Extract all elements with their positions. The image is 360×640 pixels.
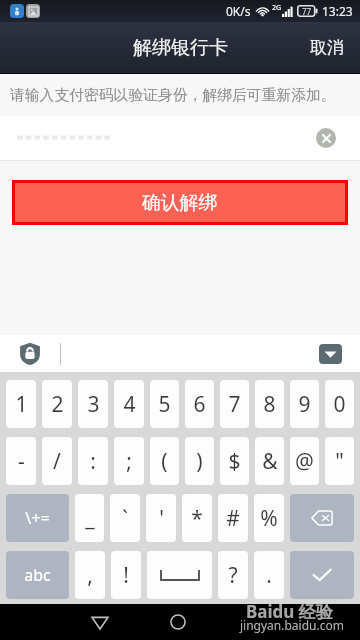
button[interactable]: ) bbox=[185, 437, 214, 485]
staticText: , bbox=[87, 561, 93, 590]
button[interactable]: . bbox=[254, 551, 284, 599]
staticText: jingyan.baidu.com bbox=[240, 617, 344, 633]
button[interactable]: 4 bbox=[114, 380, 144, 428]
staticText: . bbox=[266, 561, 272, 590]
button[interactable]: space bbox=[147, 551, 212, 599]
staticText: ? bbox=[228, 561, 238, 590]
button[interactable]: / bbox=[42, 437, 72, 485]
button[interactable]: abc bbox=[6, 551, 69, 599]
staticText: 2G bbox=[272, 3, 282, 13]
staticText: 2 bbox=[51, 390, 64, 419]
button[interactable]: 0 bbox=[325, 380, 354, 428]
staticText: 0 bbox=[333, 390, 346, 419]
staticText: ` bbox=[122, 504, 128, 533]
button[interactable]: - bbox=[6, 437, 36, 485]
button[interactable]: ' bbox=[146, 494, 176, 542]
button[interactable]: , bbox=[75, 551, 105, 599]
button[interactable]: _ bbox=[75, 494, 104, 542]
staticText: % bbox=[260, 504, 278, 533]
button[interactable]: Secure input bbox=[19, 342, 41, 365]
staticText: 4 bbox=[123, 390, 136, 419]
button[interactable]: ? bbox=[218, 551, 248, 599]
staticText: 1 bbox=[15, 390, 28, 419]
staticText: 77 bbox=[302, 6, 312, 17]
button[interactable]: 7 bbox=[220, 380, 249, 428]
staticText: 8 bbox=[263, 390, 276, 419]
staticText: - bbox=[18, 447, 25, 476]
button[interactable]: ; bbox=[114, 437, 144, 485]
staticText: 13:23 bbox=[322, 3, 353, 19]
button[interactable]: ( bbox=[150, 437, 179, 485]
staticText: 9 bbox=[298, 390, 311, 419]
staticText: " bbox=[335, 447, 344, 476]
button[interactable]: 取消 bbox=[294, 22, 360, 73]
staticText: 解绑银行卡 bbox=[133, 36, 228, 60]
staticText: 取消 bbox=[310, 37, 344, 58]
button[interactable]: 6 bbox=[185, 380, 214, 428]
staticText: ; bbox=[126, 447, 132, 476]
button[interactable]: ! bbox=[111, 551, 141, 599]
button[interactable]: 9 bbox=[290, 380, 319, 428]
staticText: 3 bbox=[87, 390, 100, 419]
button[interactable]: backspace bbox=[290, 494, 354, 542]
button[interactable]: Clear bbox=[316, 128, 336, 148]
staticText: / bbox=[53, 447, 61, 476]
staticText: 确认解绑 bbox=[142, 191, 218, 215]
button[interactable]: 5 bbox=[150, 380, 179, 428]
button[interactable]: 1 bbox=[6, 380, 36, 428]
staticText: \+= bbox=[25, 507, 50, 529]
staticText: _ bbox=[85, 504, 95, 533]
button[interactable]: 确认解绑 bbox=[15, 183, 345, 222]
staticText: 5 bbox=[158, 390, 171, 419]
staticText: ' bbox=[159, 504, 164, 533]
button[interactable]: $ bbox=[220, 437, 249, 485]
button[interactable]: 3 bbox=[78, 380, 108, 428]
button[interactable]: * bbox=[182, 494, 212, 542]
staticText: Baidu 经验 bbox=[246, 600, 333, 623]
staticText: : bbox=[90, 447, 96, 476]
staticText: ) bbox=[196, 447, 203, 476]
staticText: 0K/s bbox=[226, 3, 251, 19]
staticText: 7 bbox=[228, 390, 241, 419]
staticText: * bbox=[191, 504, 203, 533]
staticText: ( bbox=[161, 447, 168, 476]
staticText: $ bbox=[228, 447, 241, 476]
button[interactable]: % bbox=[254, 494, 284, 542]
button[interactable]: Home bbox=[160, 604, 196, 640]
staticText: & bbox=[262, 447, 278, 476]
staticText: abc bbox=[24, 564, 51, 586]
button[interactable]: Hide keyboard bbox=[319, 344, 342, 364]
button[interactable]: : bbox=[78, 437, 108, 485]
button[interactable]: " bbox=[325, 437, 354, 485]
button[interactable]: ` bbox=[110, 494, 140, 542]
button[interactable]: enter bbox=[290, 551, 354, 599]
staticText: 请输入支付密码以验证身份，解绑后可重新添加。 bbox=[10, 86, 336, 105]
button[interactable]: \+= bbox=[6, 494, 69, 542]
staticText: 6 bbox=[193, 390, 206, 419]
button[interactable]: 2 bbox=[42, 380, 72, 428]
staticText: ! bbox=[123, 561, 129, 590]
staticText: @ bbox=[295, 447, 314, 476]
button[interactable]: 8 bbox=[255, 380, 284, 428]
button[interactable]: Back bbox=[82, 604, 118, 640]
staticText: # bbox=[226, 504, 240, 533]
button[interactable]: @ bbox=[290, 437, 319, 485]
button[interactable]: & bbox=[255, 437, 284, 485]
button[interactable]: # bbox=[218, 494, 248, 542]
